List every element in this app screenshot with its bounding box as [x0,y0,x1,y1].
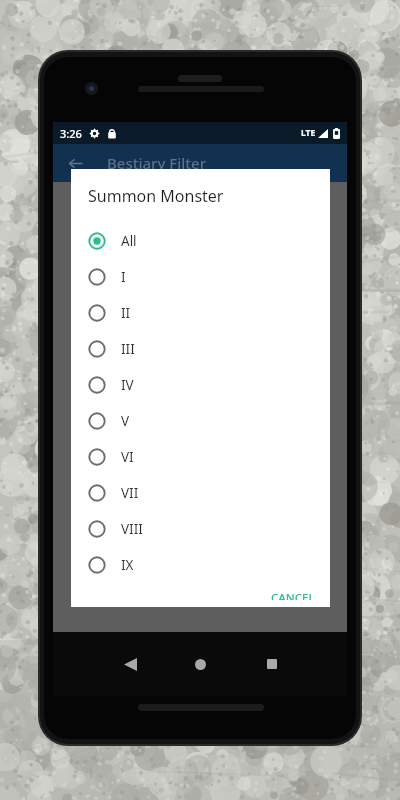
staticText: Summon Monster [88,185,224,207]
button[interactable]: VI [71,439,330,475]
button[interactable]: IX [71,547,330,583]
staticText: III [121,340,135,358]
button[interactable]: II [71,295,330,331]
staticText: I [121,268,126,286]
staticText: VI [121,448,134,466]
staticText: Bestiary Filter [107,153,206,173]
staticText: CANCEL [271,590,315,600]
button[interactable]: Home [183,647,217,681]
button[interactable]: CANCEL [262,583,324,607]
staticText: II [121,304,131,322]
button[interactable]: I [71,259,330,295]
staticText: LTE [301,127,316,139]
button[interactable]: III [71,331,330,367]
staticText: 3:26 [60,126,82,141]
staticText: All [121,232,137,250]
button[interactable]: IV [71,367,330,403]
staticText: VII [121,484,139,502]
button[interactable]: Back [59,147,91,179]
staticText: IX [121,556,134,574]
button[interactable]: Recent apps [255,647,289,681]
button[interactable]: VII [71,475,330,511]
button[interactable]: Back [113,647,147,681]
staticText: VIII [121,520,143,538]
button[interactable]: All [71,223,330,259]
button[interactable]: VIII [71,511,330,547]
staticText: V [121,412,130,430]
button[interactable]: V [71,403,330,439]
staticText: IV [121,376,134,394]
